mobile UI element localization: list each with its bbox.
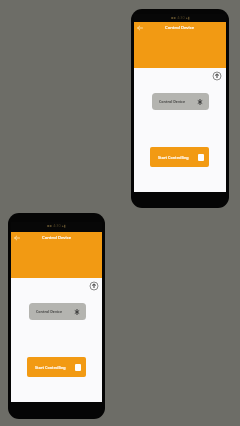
button[interactable]: Control Device [152,93,209,110]
button[interactable]: Back [13,234,21,242]
staticText: Control Device [42,235,72,241]
staticText: Start Controlling [158,155,189,160]
button[interactable]: Upload [88,280,100,292]
button[interactable]: Control Device [29,303,86,320]
staticText: ▪▪ 4:30 ▴▮ [171,15,190,20]
button[interactable]: Start Controlling [27,357,86,377]
staticText: ▪▪ 4:30 ▴▮ [47,223,66,228]
staticText: Control Device [159,99,186,104]
staticText: Start Controlling [35,365,66,370]
button[interactable]: Upload [211,70,223,82]
staticText: Control Device [36,309,63,314]
button[interactable]: Back [136,24,144,32]
staticText: Control Device [165,25,195,31]
button[interactable]: Start Controlling [150,147,209,167]
